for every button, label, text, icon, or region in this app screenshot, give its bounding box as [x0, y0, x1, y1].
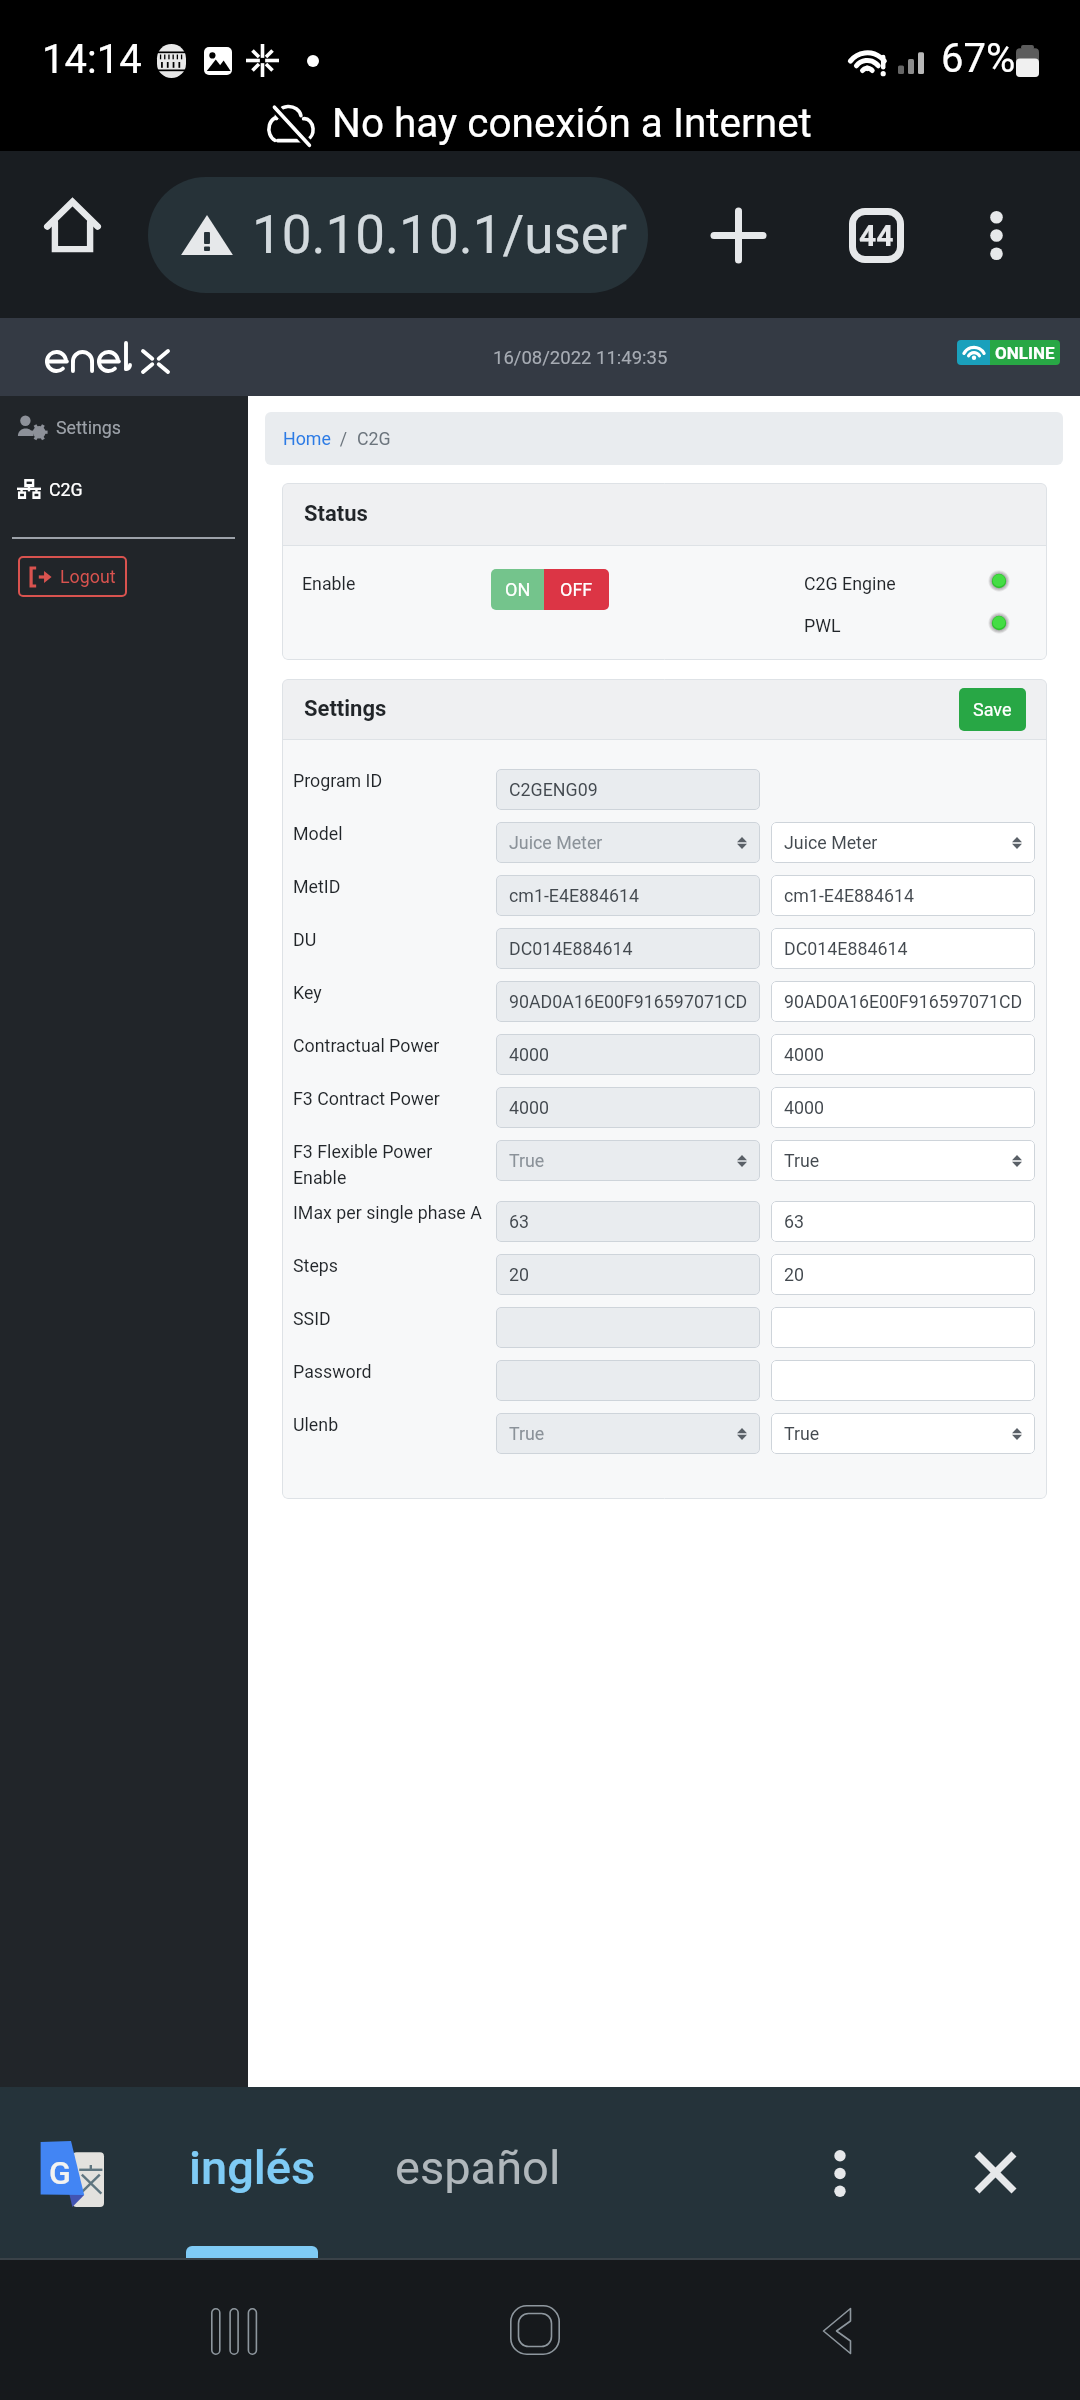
button[interactable]: Home — [475, 2270, 595, 2390]
button[interactable]: True — [771, 1413, 1035, 1454]
button[interactable]: Logout — [18, 556, 127, 597]
button[interactable]: New tab — [683, 180, 793, 290]
staticText: No hay conexión a Internet — [332, 99, 812, 146]
staticText: True — [784, 1150, 820, 1171]
staticText: Program ID — [293, 770, 383, 791]
staticText: Status — [304, 501, 368, 527]
staticText: Password — [293, 1361, 372, 1382]
staticText: Save — [973, 699, 1012, 720]
button[interactable]: Save — [959, 688, 1026, 731]
button[interactable]: cm1-E4E884614 — [771, 875, 1035, 916]
staticText: 16/08/2022 11:49:35 — [493, 347, 668, 369]
staticText: 20 — [509, 1264, 530, 1285]
staticText: cm1-E4E884614 — [784, 885, 915, 906]
button[interactable]: Home — [283, 428, 331, 449]
staticText: 67% — [941, 35, 1016, 82]
button[interactable]: More options — [941, 180, 1051, 290]
staticText: 14:14 — [42, 36, 142, 83]
button[interactable] — [771, 1307, 1035, 1348]
button[interactable]: Settings — [0, 402, 248, 452]
staticText: ONLINE — [995, 343, 1055, 363]
button[interactable]: More options — [790, 2123, 890, 2223]
staticText: Key — [293, 982, 322, 1003]
staticText: DC014E884614 — [784, 938, 908, 959]
staticText: F3 Flexible Power Enable — [293, 1141, 433, 1188]
staticText: Contractual Power — [293, 1035, 440, 1056]
staticText: / — [331, 428, 357, 449]
staticText: Settings — [56, 417, 121, 438]
staticText: G — [49, 2154, 71, 2192]
staticText: 20 — [784, 1264, 805, 1285]
button[interactable]: Tabs — [821, 180, 931, 290]
button[interactable]: Google Translate — [38, 2141, 104, 2207]
button[interactable]: Home — [17, 170, 127, 280]
button[interactable]: 63 — [771, 1201, 1035, 1242]
staticText: SSID — [293, 1308, 331, 1329]
staticText: F3 Contract Power — [293, 1088, 440, 1109]
staticText: 4000 — [784, 1097, 825, 1118]
button[interactable]: 20 — [771, 1254, 1035, 1295]
button[interactable]: Recents — [173, 2271, 293, 2391]
staticText: inglés — [189, 2140, 316, 2195]
staticText: IMax per single phase A — [293, 1202, 482, 1223]
button[interactable]: inglés — [157, 2087, 347, 2258]
button[interactable]: 4000 — [771, 1034, 1035, 1075]
staticText: C2GENG09 — [509, 779, 598, 800]
staticText: C2G — [49, 479, 83, 500]
staticText: 63 — [509, 1211, 530, 1232]
staticText: Logout — [60, 566, 116, 587]
staticText: Juice Meter — [784, 832, 878, 853]
button[interactable]: 90AD0A16E00F916597071CD — [771, 981, 1035, 1022]
staticText: MetID — [293, 876, 341, 897]
staticText: cm1-E4E884614 — [509, 885, 640, 906]
button[interactable]: español — [367, 2087, 589, 2258]
staticText: True — [784, 1423, 820, 1444]
staticText: 4000 — [509, 1044, 550, 1065]
staticText: ON — [505, 579, 531, 600]
staticText: español — [395, 2140, 561, 2195]
button[interactable]: DC014E884614 — [771, 928, 1035, 969]
staticText: 4000 — [784, 1044, 825, 1065]
button[interactable] — [771, 1360, 1035, 1401]
staticText: DC014E884614 — [509, 938, 633, 959]
staticText: Ulenb — [293, 1414, 339, 1435]
staticText: Model — [293, 823, 343, 844]
staticText: C2G Engine — [804, 573, 896, 594]
staticText: C2G — [357, 428, 391, 449]
staticText: DU — [293, 929, 317, 950]
button[interactable]: Back — [777, 2271, 897, 2391]
button[interactable]: 10.10.10.1/user — [148, 177, 648, 293]
staticText: 90AD0A16E00F916597071CD — [509, 991, 748, 1012]
staticText: True — [509, 1150, 545, 1171]
staticText: 44 — [859, 218, 894, 253]
button[interactable]: OFF — [544, 569, 609, 610]
button[interactable]: C2G — [0, 464, 248, 514]
staticText: Enable — [302, 573, 356, 594]
button[interactable]: Juice Meter — [771, 822, 1035, 863]
button[interactable]: 4000 — [771, 1087, 1035, 1128]
staticText: OFF — [560, 579, 593, 600]
staticText: Steps — [293, 1255, 339, 1276]
button[interactable]: Close — [945, 2122, 1045, 2222]
staticText: 4000 — [509, 1097, 550, 1118]
staticText: True — [509, 1423, 545, 1444]
button[interactable]: True — [771, 1140, 1035, 1181]
staticText: 10.10.10.1/user — [252, 204, 627, 266]
staticText: PWL — [804, 615, 841, 636]
staticText: 90AD0A16E00F916597071CD — [784, 991, 1023, 1012]
staticText: Settings — [304, 696, 387, 722]
staticText: Juice Meter — [509, 832, 603, 853]
button[interactable]: ON — [491, 569, 544, 610]
staticText: 63 — [784, 1211, 805, 1232]
